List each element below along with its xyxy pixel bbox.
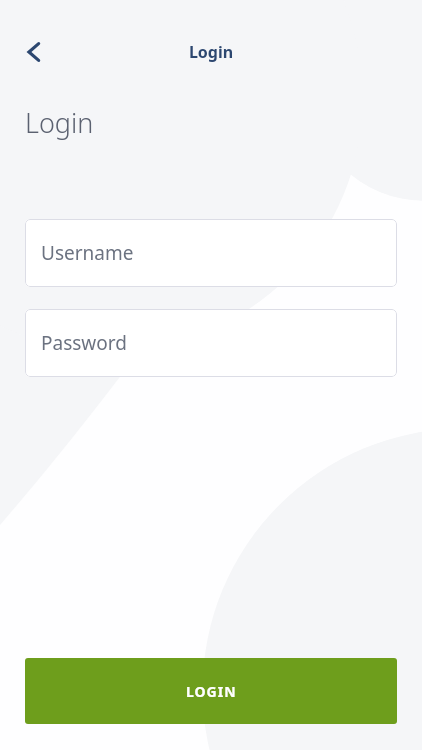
button[interactable]: LOGIN [25,658,397,724]
staticText: LOGIN [186,682,237,701]
button[interactable]: Password [25,309,397,377]
staticText: Login [0,41,422,63]
button[interactable]: Username [25,219,397,287]
staticText: Password [41,330,127,356]
staticText: Login [25,104,94,141]
button[interactable]: Back [14,30,58,74]
staticText: Username [41,240,134,266]
